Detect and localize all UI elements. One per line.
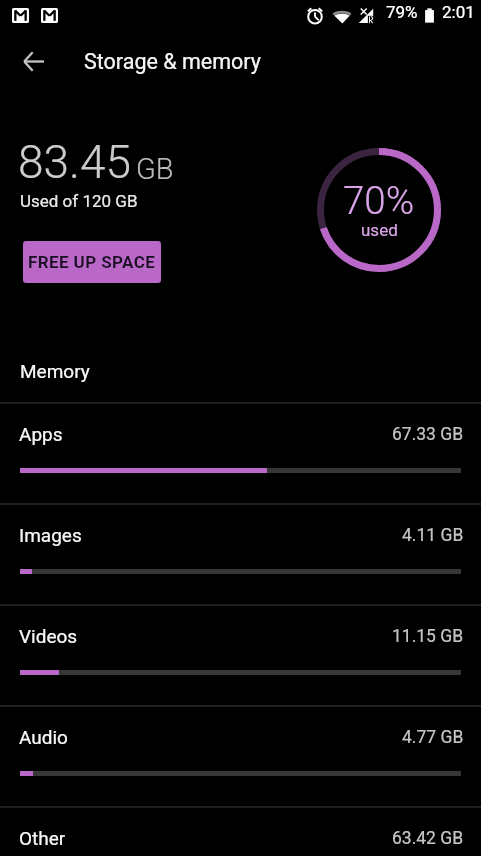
staticText: Videos (19, 625, 78, 647)
staticText: 83.45 (18, 135, 132, 189)
button[interactable]: Audio (0, 705, 481, 806)
staticText: 63.42 GB (392, 828, 464, 849)
button[interactable]: Apps (0, 402, 481, 503)
button[interactable]: Videos (0, 604, 481, 705)
staticText: Other (19, 827, 66, 849)
staticText: Storage & memory (84, 49, 261, 74)
button[interactable]: Other (0, 806, 481, 856)
staticText: Audio (19, 726, 68, 748)
button[interactable]: Images (0, 503, 481, 604)
staticText: used (361, 220, 398, 240)
staticText: 4.11 GB (402, 525, 464, 546)
staticText: Images (19, 524, 82, 546)
staticText: 2:01 (442, 2, 475, 22)
staticText: FREE UP SPACE (28, 252, 156, 272)
staticText: 67.33 GB (392, 424, 464, 445)
staticText: Memory (20, 360, 90, 382)
staticText: 79% (386, 2, 418, 22)
staticText: 4.77 GB (402, 727, 464, 748)
button[interactable]: Back (9, 37, 57, 85)
button[interactable]: FREE UP SPACE (23, 241, 161, 283)
staticText: 11.15 GB (392, 626, 464, 647)
staticText: Apps (19, 423, 63, 445)
staticText: GB (136, 152, 174, 186)
button[interactable]: Storage used 70 percent (317, 148, 441, 272)
staticText: 70% (343, 178, 415, 223)
staticText: Used of 120 GB (20, 191, 138, 211)
